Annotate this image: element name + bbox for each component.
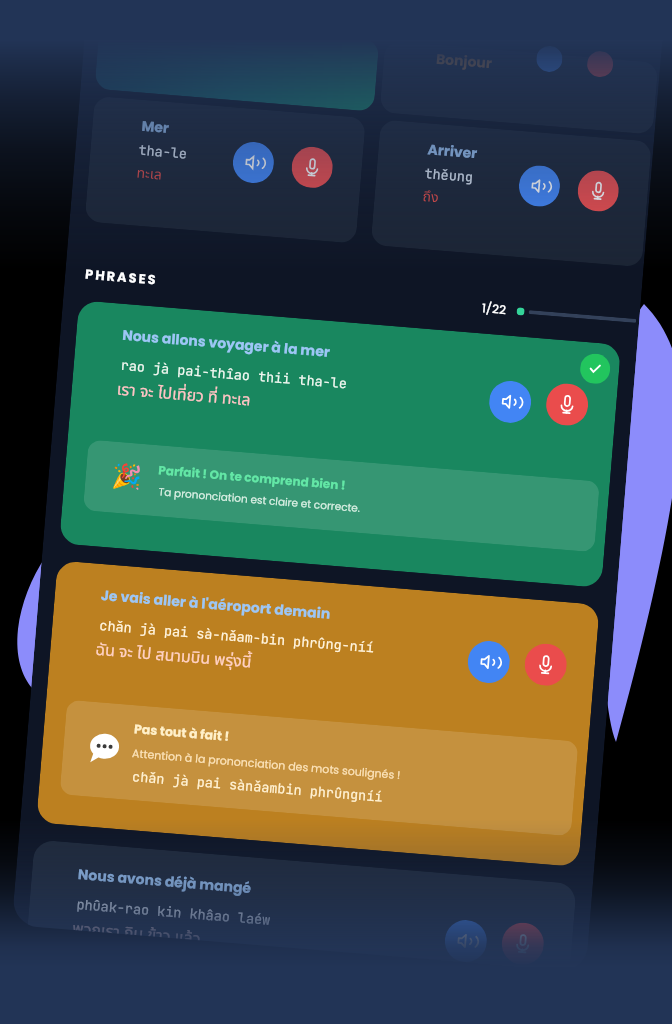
button[interactable]: Nous avons déjà mangé: [28, 839, 577, 971]
staticText: พวกเรา กิน ข้าว แล้ว: [72, 917, 202, 940]
staticText: chǎn jà pai sànǎambin phrûngníí: [131, 767, 384, 806]
staticText: ถึง: [422, 186, 439, 208]
staticText: thěung: [424, 164, 474, 186]
staticText: PHRASES: [84, 265, 159, 289]
button[interactable]: Play audio: [231, 140, 275, 185]
button[interactable]: Record: [576, 169, 620, 213]
staticText: ฉัน จะ ไป สนามบิน พรุ่งนี้: [94, 638, 253, 675]
button[interactable]: Record: [500, 921, 545, 966]
staticText: Ta prononciation est claire et correcte.: [158, 484, 361, 516]
button[interactable]: Record: [290, 145, 334, 189]
staticText: Nous allons voyager à la mer: [121, 325, 331, 362]
staticText: Pas tout à fait !: [133, 720, 230, 745]
staticText: ทะเล: [136, 162, 163, 186]
button[interactable]: Record: [523, 642, 568, 687]
staticText: 1/22: [481, 299, 507, 318]
staticText: rao jà pai-thîao thii tha-le: [120, 356, 348, 392]
staticText: Mer: [141, 116, 170, 138]
staticText: Je vais aller à l'aéroport demain: [100, 585, 332, 624]
staticText: Arriver: [427, 139, 478, 163]
button[interactable]: Play audio: [517, 164, 561, 208]
button[interactable]: Je vais aller à l'aéroport demain: [36, 560, 600, 867]
staticText: tha-le: [138, 141, 188, 163]
button[interactable]: Mer: [84, 96, 366, 244]
staticText: 🎉: [111, 461, 143, 492]
staticText: Bonjour: [435, 49, 494, 73]
button[interactable]: Play audio: [487, 379, 533, 424]
staticText: Parfait ! On te comprend bien !: [158, 461, 346, 494]
button[interactable]: Play audio: [443, 918, 488, 964]
staticText: เรา จะ ไปเที่ยว ที่ ทะเล: [116, 378, 252, 413]
button[interactable]: Nous allons voyager à la mer: [59, 300, 621, 588]
staticText: chǎn jà pai sà-nǎam-bin phrûng-níí: [99, 616, 375, 657]
button[interactable]: Record: [544, 382, 590, 427]
button[interactable]: Play audio: [466, 639, 511, 685]
button[interactable]: Arriver: [371, 119, 652, 267]
staticText: Nous avons déjà mangé: [77, 864, 252, 898]
staticText: phûak-rao kin khâao laéw: [76, 895, 272, 929]
staticText: Attention à la prononciation des mots so…: [131, 745, 402, 782]
